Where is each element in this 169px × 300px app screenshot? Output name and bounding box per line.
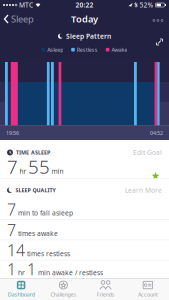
staticText: Learn More — [125, 186, 162, 195]
staticText: Edit Goal — [133, 148, 162, 157]
staticText: hr — [16, 268, 27, 277]
staticText: 7 — [7, 154, 18, 179]
staticText: Dashboard — [8, 291, 35, 298]
staticText: Today — [71, 13, 98, 25]
staticText: min — [51, 167, 63, 176]
staticText: 52% — [139, 1, 153, 9]
staticText: 19:56 — [6, 129, 19, 137]
staticText: Friends — [97, 291, 115, 298]
staticText: times awake — [16, 229, 58, 238]
staticText: 14 — [7, 239, 25, 261]
staticText: 04:52 — [150, 129, 163, 137]
staticText: 20:22 — [75, 1, 93, 9]
button[interactable]: Learn More — [125, 186, 162, 195]
staticText: times restless — [25, 249, 70, 258]
staticText: hr — [19, 167, 26, 176]
staticText: Restless — [77, 46, 98, 53]
staticText: Challenges — [50, 291, 76, 298]
staticText: Account — [138, 291, 158, 298]
button[interactable]: Dashboard — [0, 279, 42, 300]
button[interactable]: Edit Goal — [133, 148, 162, 157]
staticText: Sleep Pattern — [66, 32, 111, 41]
staticText: 1 — [27, 258, 36, 280]
staticText: Asleep — [47, 46, 63, 53]
button[interactable]: Account — [127, 279, 169, 300]
staticText: SLEEP QUALITY — [15, 187, 55, 194]
button[interactable] — [153, 18, 169, 20]
staticText: TIME ASLEEP — [16, 149, 50, 156]
staticText: 55 — [28, 154, 50, 179]
button[interactable]: Sleep — [0, 13, 34, 25]
staticText: min awake / restless — [36, 268, 103, 277]
button[interactable]: Challenges — [42, 279, 84, 300]
staticText: MTC — [19, 1, 33, 9]
staticText: 7 — [7, 199, 16, 220]
button[interactable]: Friends — [84, 279, 127, 300]
staticText: 7 — [7, 219, 16, 240]
staticText: Awake — [111, 46, 127, 53]
staticText: min to fall asleep — [16, 208, 73, 217]
staticText: Sleep — [11, 13, 34, 25]
button[interactable] — [156, 38, 163, 45]
staticText: 1 — [7, 258, 16, 280]
